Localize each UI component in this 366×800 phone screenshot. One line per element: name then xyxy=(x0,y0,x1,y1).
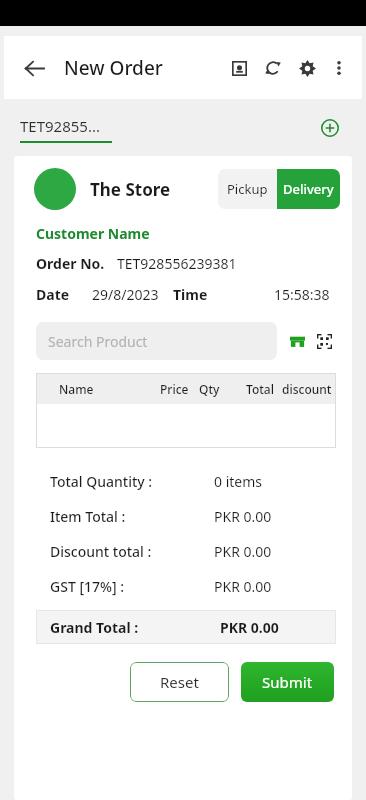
button[interactable]: Scan barcode xyxy=(312,329,336,353)
button[interactable]: More options xyxy=(324,53,354,83)
staticText: TET928556239381 xyxy=(117,254,237,273)
button[interactable]: Reset xyxy=(130,662,229,702)
staticText: PKR 0.00 xyxy=(214,542,272,561)
staticText: Discount total : xyxy=(50,542,152,561)
button[interactable]: Sync xyxy=(256,51,290,85)
staticText: Customer Name xyxy=(36,224,150,243)
button[interactable]: Save xyxy=(222,51,256,85)
button[interactable]: Pickup xyxy=(218,169,277,209)
staticText: New Order xyxy=(64,55,163,81)
staticText: Delivery xyxy=(283,180,334,198)
staticText: GST [17%] : xyxy=(50,577,125,596)
staticText: Item Total : xyxy=(50,507,126,526)
button[interactable]: Back xyxy=(16,50,52,86)
staticText: Qty xyxy=(199,381,220,397)
staticText: 0 items xyxy=(214,472,263,491)
staticText: 15:58:38 xyxy=(274,285,330,304)
staticText: Date xyxy=(36,285,70,304)
staticText: PKR 0.00 xyxy=(214,507,272,526)
button[interactable]: Submit xyxy=(241,662,334,702)
staticText: Total Quantity : xyxy=(50,472,153,491)
button[interactable]: Store products xyxy=(285,329,309,353)
button[interactable]: Store logo xyxy=(34,168,76,210)
staticText: Pickup xyxy=(227,180,268,198)
button[interactable]: Delivery xyxy=(277,169,340,209)
staticText: Grand Total : xyxy=(50,618,139,637)
staticText: 29/8/2023 xyxy=(92,285,159,304)
staticText: Reset xyxy=(160,672,199,692)
staticText: Search Product xyxy=(48,332,148,351)
staticText: The Store xyxy=(90,178,171,201)
staticText: TET92855... xyxy=(20,116,100,136)
button[interactable]: TET92855... xyxy=(20,112,112,143)
staticText: Name xyxy=(59,381,94,397)
staticText: PKR 0.00 xyxy=(214,577,272,596)
button[interactable]: Add order xyxy=(314,112,346,144)
staticText: Order No. xyxy=(36,254,105,273)
staticText: Total xyxy=(246,381,274,397)
staticText: Price xyxy=(160,381,189,397)
button[interactable]: Settings xyxy=(290,51,324,85)
staticText: Time xyxy=(173,285,208,304)
staticText: Submit xyxy=(262,672,313,692)
staticText: discount xyxy=(282,381,332,397)
button[interactable]: Search Product xyxy=(36,322,277,360)
staticText: PKR 0.00 xyxy=(220,618,279,637)
